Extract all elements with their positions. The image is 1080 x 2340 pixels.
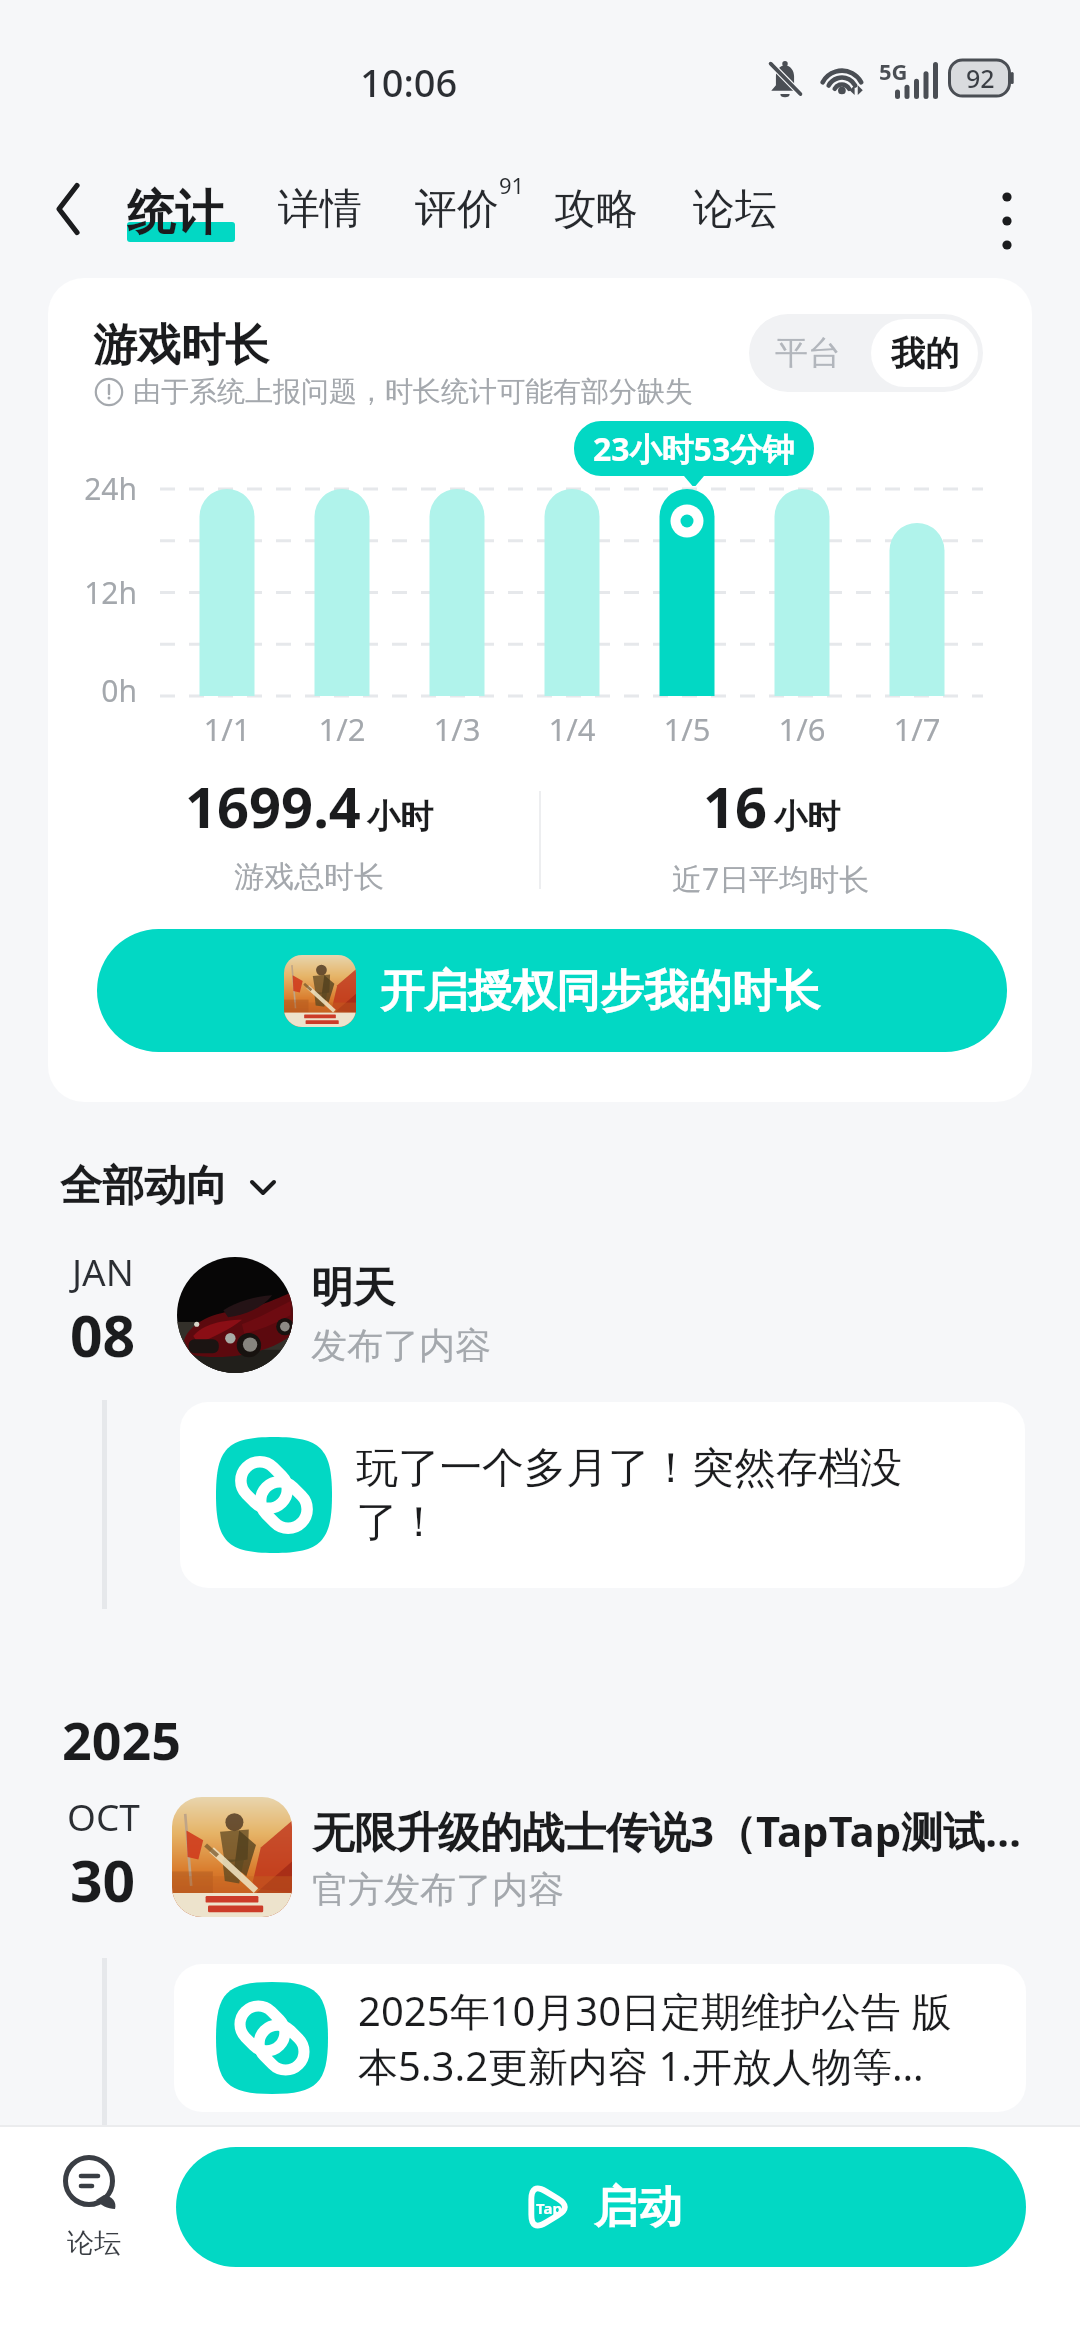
staticText: 1/3 [407,708,507,750]
button[interactable]: Tap [176,2147,1026,2267]
button[interactable]: 全部动向 [48,1154,294,1219]
staticText: 我的 [891,332,959,375]
staticText: 论坛 [67,2226,121,2260]
button[interactable]: 评价 [412,177,502,242]
staticText: 1/1 [177,708,277,750]
staticText: 5G [879,56,908,86]
button[interactable]: 无限升级的战士传说3（TapTap测试… [172,1797,1027,1917]
button[interactable]: 2025年10月30日定期维护公告 版本5.3.2更新内容 1.开放人物等… [174,1964,1026,2112]
staticText: 92 [966,61,995,95]
staticText: 91 [499,170,525,200]
staticText: OCT [67,1791,140,1841]
staticText: 游戏总时长 [234,858,384,896]
button[interactable]: Back [30,171,106,247]
staticText: 1699.4 [185,768,361,844]
button[interactable]: 统计 [124,177,238,249]
staticText: JAN [72,1246,134,1296]
staticText: 1/4 [522,708,622,750]
staticText: 统计 [127,183,223,243]
staticText: 开启授权同步我的时长 [380,964,820,1019]
staticText: Tap [536,2198,562,2218]
staticText: 启动 [594,2180,682,2235]
button[interactable]: 明天 [177,1256,1027,1374]
button[interactable]: 论坛 [690,177,780,242]
staticText: 24h [57,468,137,509]
staticText: 评价 [415,183,499,236]
staticText: 0h [57,670,137,711]
staticText: 全部动向 [60,1160,228,1213]
staticText: 12h [57,572,137,613]
button[interactable]: 详情 [275,177,365,242]
button[interactable]: 我的 [871,319,978,387]
staticText: 详情 [278,183,362,236]
staticText: 平台 [775,332,841,374]
staticText: 无限升级的战士传说3（TapTap测试… [312,1802,1022,1859]
staticText: 16 [703,768,768,844]
staticText: 发布了内容 [311,1323,491,1368]
staticText: 明天 [311,1262,395,1315]
staticText: 由于系统上报问题，时长统计可能有部分缺失 [133,374,693,409]
staticText: 小时 [367,796,433,838]
staticText: 近7日平均时长 [672,858,870,898]
staticText: 1/6 [752,708,852,750]
staticText: 论坛 [693,183,777,236]
staticText: 1/2 [292,708,392,750]
staticText: 08 [70,1296,136,1374]
staticText: 30 [70,1841,136,1919]
staticText: 2025年10月30日定期维护公告 版本5.3.2更新内容 1.开放人物等… [358,1983,970,2093]
staticText: 10:06 [360,56,458,108]
staticText: 攻略 [554,183,638,236]
staticText: 2025 [62,1704,181,1775]
staticText: 游戏时长 [93,318,269,373]
button[interactable]: 平台 [749,314,866,392]
button[interactable]: 玩了一个多月了！突然存档没了！ [180,1402,1025,1588]
staticText: 1/5 [637,708,737,750]
staticText: 1/7 [867,708,967,750]
staticText: 小时 [774,796,840,838]
button[interactable]: 开启授权同步我的时长 [97,929,1007,1052]
button[interactable]: 攻略 [551,177,641,242]
button[interactable]: 论坛 [30,2155,158,2260]
staticText: 官方发布了内容 [312,1867,564,1912]
staticText: 玩了一个多月了！突然存档没了！ [356,1442,956,1549]
button[interactable]: More options [962,176,1052,266]
staticText: 23小时53分钟 [593,427,795,471]
